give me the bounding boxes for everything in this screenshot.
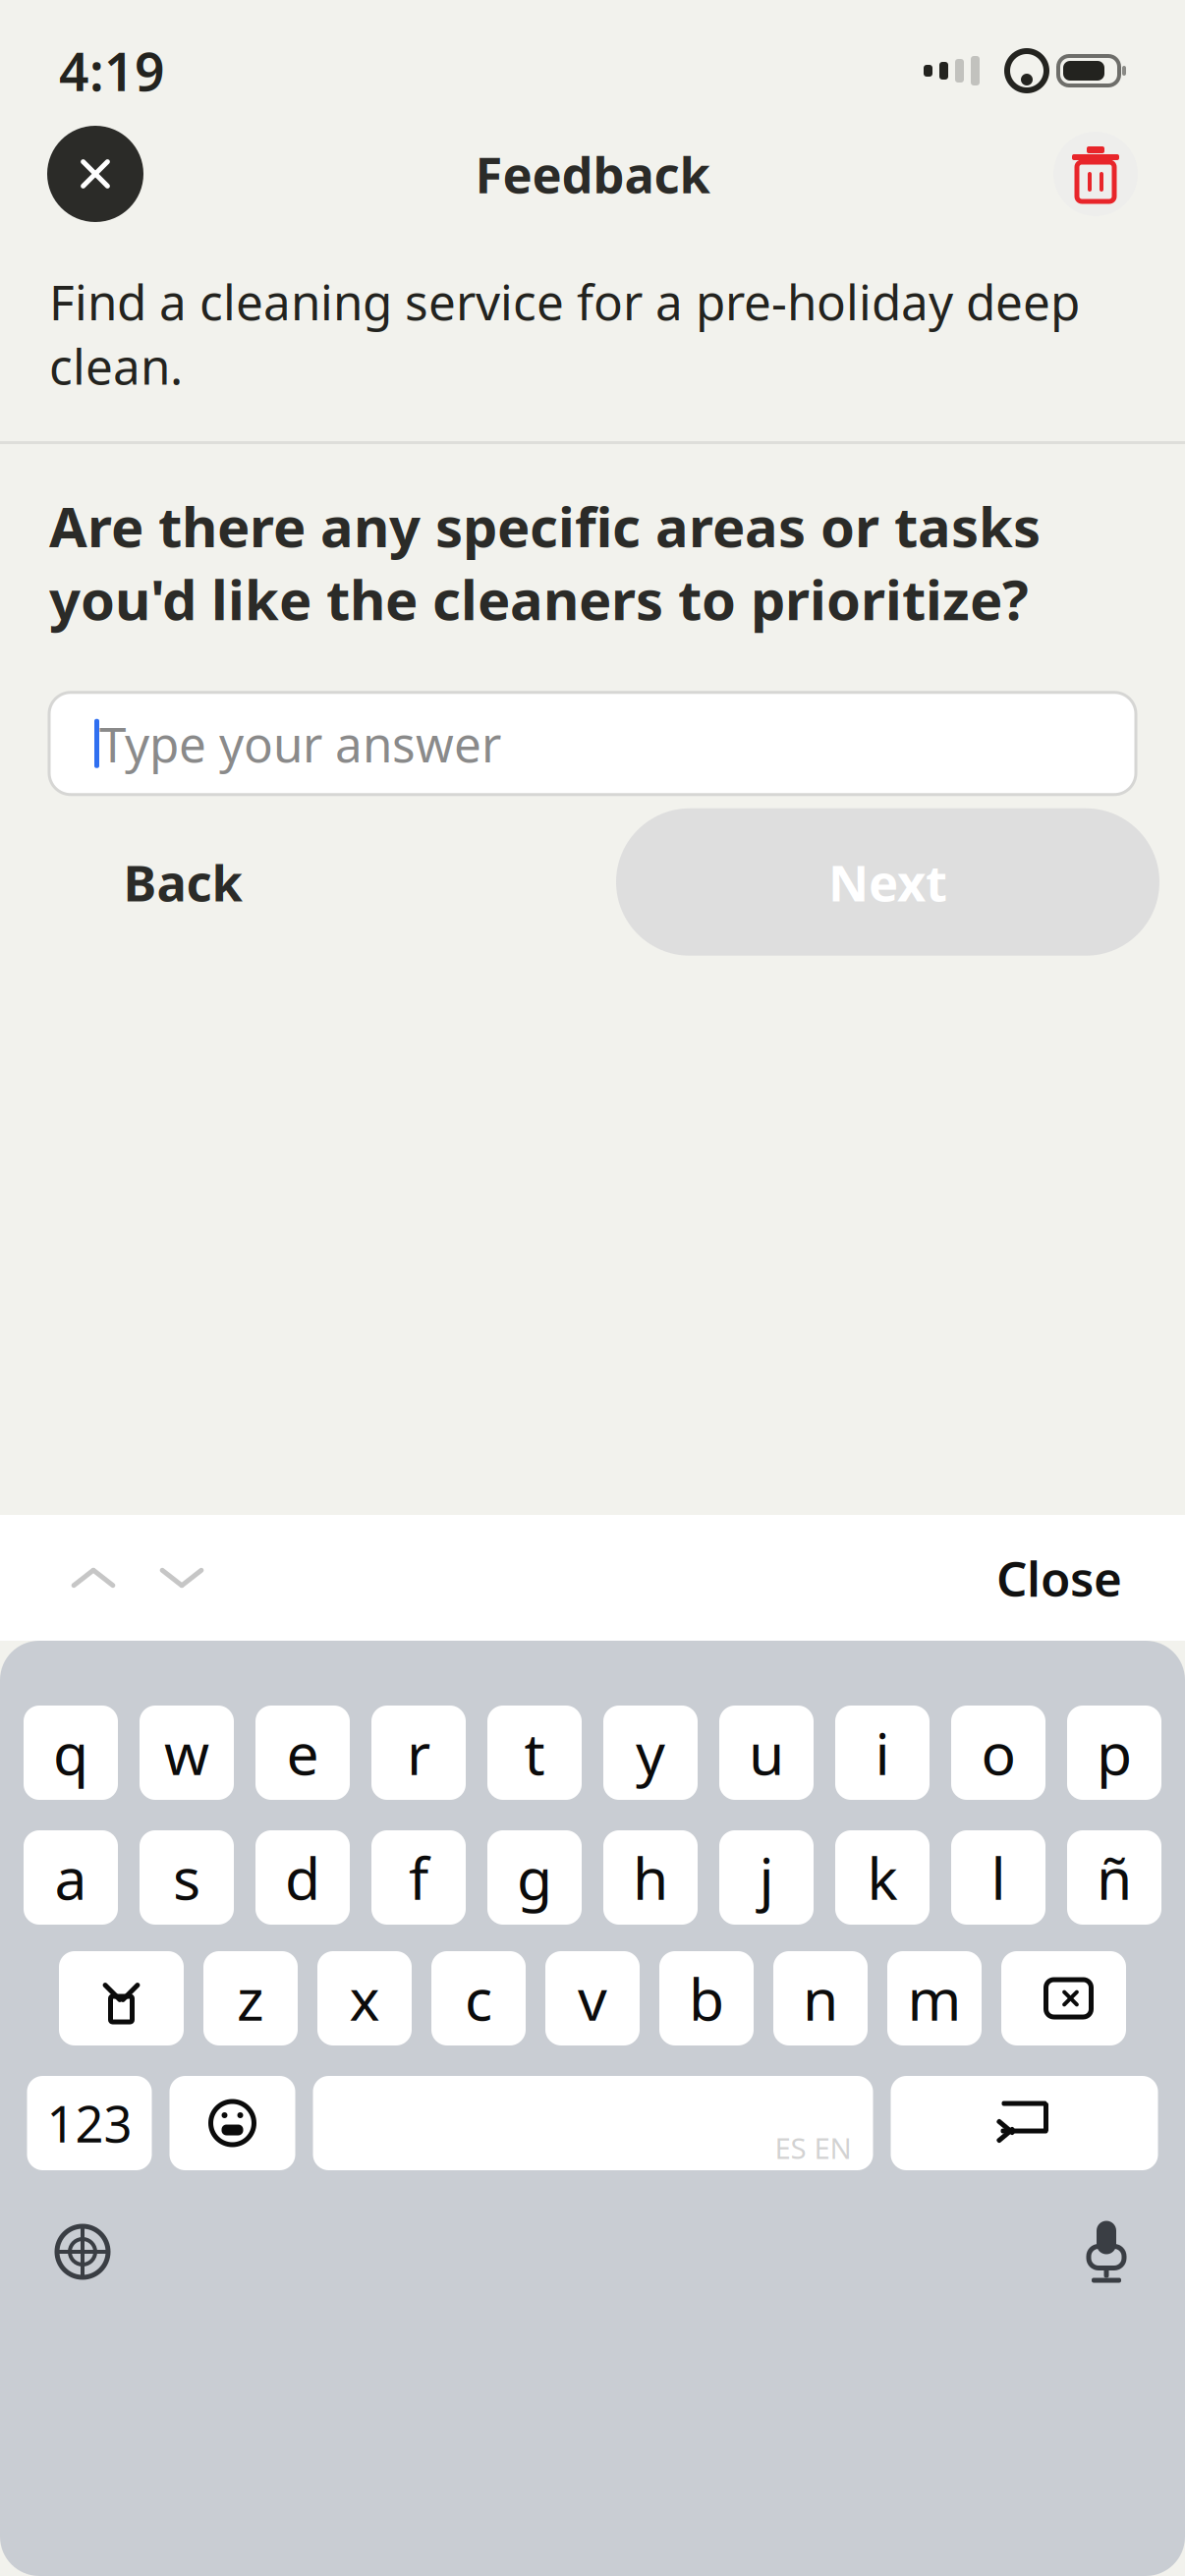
button[interactable]: j: [719, 1830, 814, 1925]
staticText: y: [636, 1714, 665, 1791]
staticText: 4:19: [59, 36, 165, 106]
button[interactable]: c: [431, 1951, 526, 2045]
staticText: m: [907, 1960, 961, 2037]
staticText: h: [633, 1839, 668, 1916]
button[interactable]: g: [487, 1830, 582, 1925]
staticText: r: [407, 1714, 430, 1791]
staticText: z: [237, 1960, 264, 2037]
button[interactable]: Return: [891, 2076, 1158, 2170]
button[interactable]: 123: [27, 2076, 152, 2170]
button[interactable]: e: [255, 1706, 350, 1800]
staticText: b: [689, 1960, 724, 2037]
staticText: t: [524, 1714, 545, 1791]
button[interactable]: Next keyboard: [55, 2224, 110, 2279]
staticText: p: [1097, 1714, 1132, 1791]
button[interactable]: Dictate: [1083, 2221, 1130, 2282]
staticText: d: [285, 1839, 320, 1916]
button[interactable]: Delete: [1001, 1951, 1126, 2045]
staticText: Close: [996, 1546, 1122, 1610]
button[interactable]: f: [371, 1830, 466, 1925]
staticText: v: [578, 1960, 607, 2037]
button[interactable]: q: [24, 1706, 118, 1800]
staticText: l: [991, 1839, 1006, 1916]
button[interactable]: Delete: [1053, 132, 1138, 216]
button[interactable]: k: [835, 1830, 930, 1925]
staticText: k: [867, 1839, 898, 1916]
staticText: Type your answer: [99, 711, 501, 776]
staticText: o: [981, 1714, 1016, 1791]
button[interactable]: l: [951, 1830, 1045, 1925]
button[interactable]: m: [887, 1951, 982, 2045]
button[interactable]: Next field: [138, 1539, 226, 1617]
staticText: e: [286, 1714, 319, 1791]
button[interactable]: Type your answer: [49, 692, 1136, 795]
staticText: Feedback: [475, 141, 710, 207]
button[interactable]: u: [719, 1706, 814, 1800]
button[interactable]: Previous field: [49, 1539, 138, 1617]
button[interactable]: Shift: [59, 1951, 184, 2045]
staticText: c: [465, 1960, 492, 2037]
button[interactable]: y: [603, 1706, 698, 1800]
staticText: Back: [123, 849, 242, 915]
button[interactable]: r: [371, 1706, 466, 1800]
button[interactable]: w: [140, 1706, 234, 1800]
button[interactable]: o: [951, 1706, 1045, 1800]
button[interactable]: ñ: [1067, 1830, 1161, 1925]
button[interactable]: b: [659, 1951, 754, 2045]
button[interactable]: d: [255, 1830, 350, 1925]
staticText: i: [875, 1714, 890, 1791]
staticText: x: [349, 1960, 380, 2037]
button[interactable]: h: [603, 1830, 698, 1925]
button[interactable]: x: [317, 1951, 412, 2045]
staticText: j: [759, 1839, 774, 1916]
button[interactable]: i: [835, 1706, 930, 1800]
staticText: g: [517, 1839, 552, 1916]
button[interactable]: a: [24, 1830, 118, 1925]
button[interactable]: n: [773, 1951, 868, 2045]
button[interactable]: p: [1067, 1706, 1161, 1800]
button[interactable]: Back: [26, 808, 340, 956]
staticText: Next: [828, 849, 947, 915]
staticText: n: [803, 1960, 838, 2037]
staticText: s: [173, 1839, 200, 1916]
button[interactable]: Close: [983, 1539, 1136, 1617]
button[interactable]: z: [203, 1951, 298, 2045]
button[interactable]: Close: [47, 126, 143, 222]
staticText: ES EN: [775, 2128, 851, 2167]
staticText: u: [749, 1714, 784, 1791]
button[interactable]: v: [545, 1951, 640, 2045]
staticText: 123: [47, 2090, 132, 2156]
staticText: f: [409, 1839, 428, 1916]
staticText: a: [55, 1839, 87, 1916]
staticText: Are there any specific areas or tasks yo…: [49, 489, 1041, 635]
button[interactable]: Space: [313, 2076, 873, 2170]
staticText: q: [53, 1714, 88, 1791]
button[interactable]: Next: [616, 808, 1159, 956]
staticText: ñ: [1097, 1839, 1132, 1916]
button[interactable]: t: [487, 1706, 582, 1800]
staticText: w: [164, 1714, 209, 1791]
button[interactable]: s: [140, 1830, 234, 1925]
button[interactable]: Emoji: [169, 2076, 295, 2170]
staticText: Find a cleaning service for a pre-holida…: [49, 269, 1080, 398]
